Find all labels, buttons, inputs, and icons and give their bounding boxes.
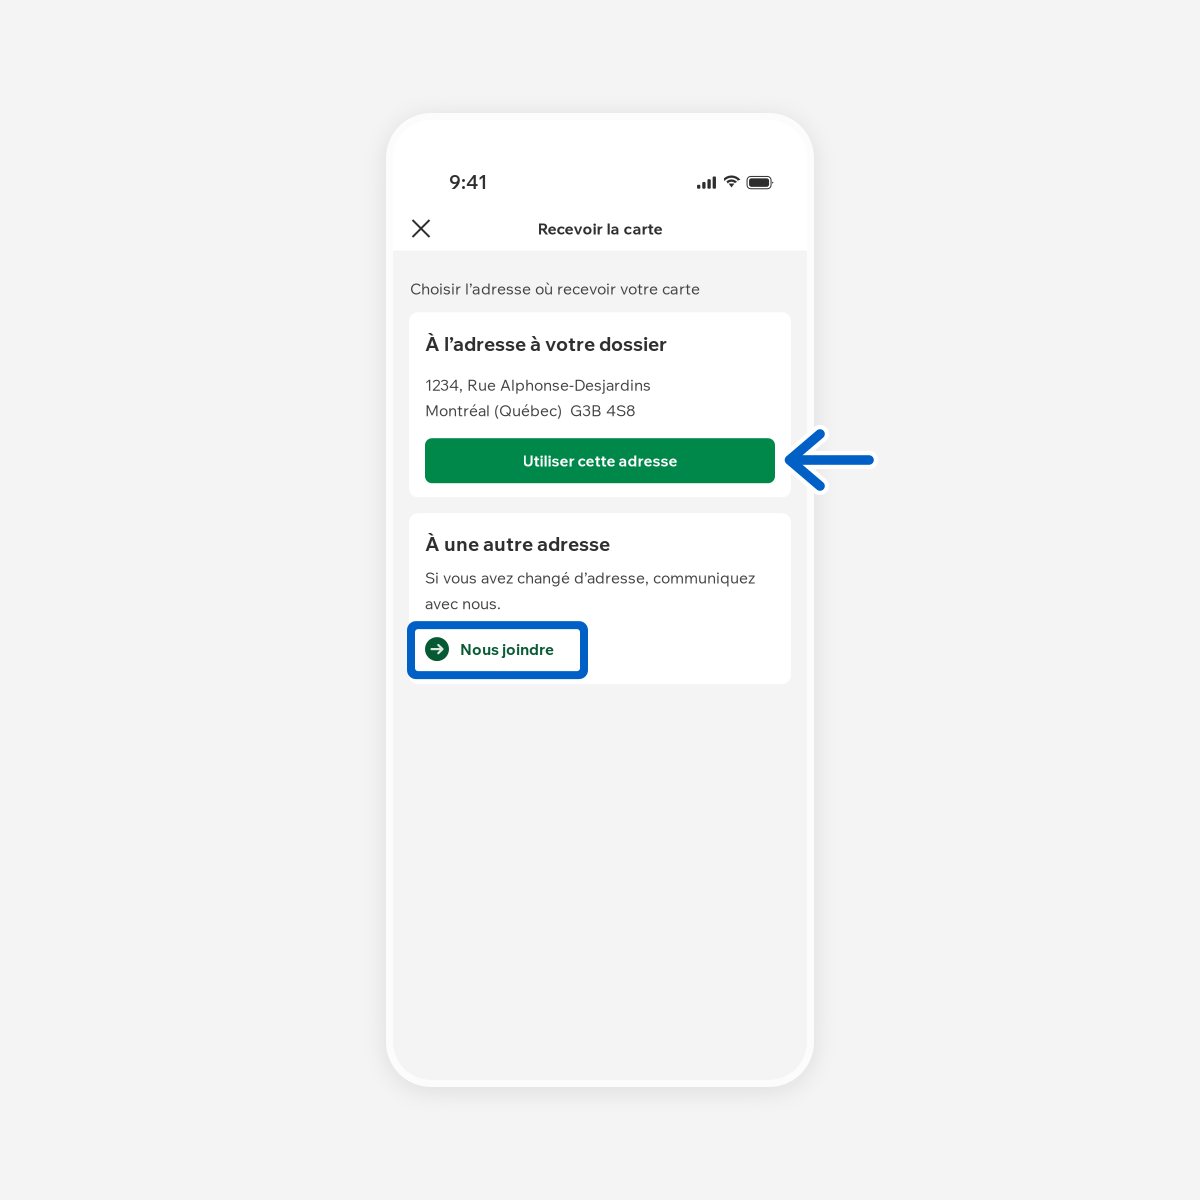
- staticText: Choisir l’adresse où recevoir votre cart…: [410, 278, 700, 298]
- button[interactable]: Fermer: [399, 208, 443, 248]
- button[interactable]: Utiliser cette adresse: [425, 438, 775, 483]
- staticText: 9:41: [449, 170, 487, 194]
- button[interactable]: Nous joindre: [407, 621, 588, 679]
- staticText: Utiliser cette adresse: [522, 451, 677, 470]
- staticText: 1234, Rue Alphonse-Desjardins: [425, 375, 651, 395]
- staticText: À l’adresse à votre dossier: [425, 331, 667, 356]
- staticText: Recevoir la carte: [537, 218, 662, 238]
- staticText: Si vous avez changé d’adresse, communiqu…: [425, 568, 755, 587]
- staticText: Montréal (Québec) G3B 4S8: [425, 401, 636, 420]
- staticText: avec nous.: [425, 593, 501, 613]
- staticText: À une autre adresse: [425, 531, 610, 556]
- staticText: Nous joindre: [460, 639, 554, 659]
